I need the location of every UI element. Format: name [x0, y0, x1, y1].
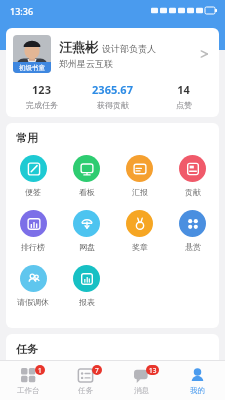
staticText: 消息 — [134, 386, 149, 395]
staticText: 任务 — [16, 342, 38, 356]
staticText: 工作台 — [17, 386, 40, 395]
staticText: 初级书童 — [19, 64, 45, 72]
staticText: 汪燕彬 — [59, 39, 98, 55]
other: 查看资料 — [198, 47, 212, 61]
staticText: 常用 — [16, 131, 38, 145]
staticText: 14 — [177, 82, 190, 97]
staticText: 我的 — [190, 386, 205, 395]
staticText: 便签 — [25, 187, 41, 197]
staticText: 2365.67 — [92, 82, 133, 97]
staticText: 7 — [95, 366, 99, 375]
staticText: 13 — [149, 366, 157, 375]
button[interactable]: 已完成 — [113, 363, 166, 390]
button[interactable]: 13 — [113, 361, 169, 400]
staticText: 请假调休 — [17, 297, 49, 307]
staticText: 任务 — [78, 386, 93, 395]
staticText: 报表 — [79, 297, 95, 307]
staticText: 1 — [38, 366, 42, 375]
staticText: 奖章 — [132, 242, 148, 252]
button[interactable]: 看板 — [60, 153, 113, 199]
staticText: 13:36 — [10, 5, 34, 17]
button[interactable]: 123 — [6, 82, 77, 110]
button[interactable]: 7 — [57, 361, 113, 400]
staticText: 网盘 — [79, 242, 95, 252]
button[interactable]: 进行中 — [60, 363, 113, 390]
staticText: 汇报 — [132, 187, 148, 197]
button[interactable]: 14 — [148, 82, 219, 110]
button[interactable]: 排行榜 — [6, 208, 60, 254]
button[interactable]: 便签 — [6, 153, 60, 199]
button[interactable]: 1 — [0, 361, 57, 400]
staticText: 点赞 — [176, 100, 192, 110]
staticText: 123 — [32, 82, 51, 97]
button[interactable]: 网盘 — [60, 208, 113, 254]
staticText: 郑州星云互联 — [59, 58, 113, 69]
button[interactable]: 贡献 — [166, 153, 219, 199]
staticText: 获得贡献 — [97, 100, 129, 110]
button[interactable]: 我的 — [169, 361, 225, 400]
staticText: 贡献 — [185, 187, 201, 197]
staticText: 看板 — [79, 187, 95, 197]
button[interactable]: 初级书童 — [6, 28, 219, 117]
button[interactable]: 请假调休 — [6, 263, 60, 309]
staticText: 完成任务 — [26, 100, 58, 110]
button[interactable]: 我的任务 — [6, 363, 60, 390]
staticText: 设计部负责人 — [102, 43, 156, 54]
staticText: 悬赏 — [185, 242, 201, 252]
button[interactable]: 2365.67 — [77, 82, 148, 110]
button[interactable]: 报表 — [60, 263, 113, 309]
button[interactable]: 悬赏 — [166, 208, 219, 254]
button[interactable]: 奖章 — [113, 208, 166, 254]
button[interactable]: 汇报 — [113, 153, 166, 199]
staticText: 排行榜 — [21, 242, 45, 252]
